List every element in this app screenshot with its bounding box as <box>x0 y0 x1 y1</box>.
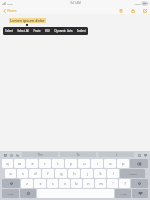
button[interactable]: i <box>91 159 103 168</box>
staticText: e <box>31 161 34 166</box>
button[interactable]: Return <box>120 169 145 178</box>
button[interactable]: h <box>68 169 80 178</box>
button[interactable]: b <box>71 179 82 188</box>
staticText: m <box>99 181 103 186</box>
button[interactable]: f <box>42 169 54 178</box>
staticText: b <box>75 181 78 186</box>
staticText: f <box>47 171 49 176</box>
staticText: Paste <box>33 29 41 33</box>
button[interactable]: New note <box>141 7 148 14</box>
staticText: x <box>39 181 42 186</box>
staticText: t <box>57 161 59 166</box>
button[interactable]: Dynamic Lists <box>52 27 75 35</box>
button[interactable]: k <box>94 169 106 178</box>
button[interactable]: c <box>47 179 58 188</box>
staticText: Indent <box>77 29 86 33</box>
staticText: d <box>34 171 37 176</box>
button[interactable]: z <box>21 179 33 188</box>
button[interactable]: d <box>29 169 41 178</box>
button[interactable]: e <box>26 159 38 168</box>
button[interactable]: Emoji <box>9 153 13 157</box>
button[interactable]: Keyboard settings <box>137 153 141 157</box>
staticText: I <box>116 153 117 157</box>
staticText: s <box>22 171 24 176</box>
button[interactable]: Paste <box>31 27 43 35</box>
staticText: ? <box>124 181 126 186</box>
staticText: c <box>52 181 54 186</box>
button[interactable]: m <box>95 179 106 188</box>
button[interactable]: Select All <box>15 27 31 35</box>
staticText: Notes <box>7 8 17 13</box>
button[interactable]: The <box>22 152 58 157</box>
button[interactable]: Delete <box>117 7 124 14</box>
staticText: q <box>6 161 9 166</box>
button[interactable]: q <box>2 159 13 168</box>
staticText: g <box>60 171 63 176</box>
staticText: return <box>129 172 137 175</box>
button[interactable]: Dismiss keyboard <box>132 189 148 198</box>
button[interactable]: a <box>5 169 16 178</box>
staticText: l <box>113 171 114 176</box>
button[interactable]: w <box>14 159 25 168</box>
button[interactable]: Backspace <box>130 159 148 168</box>
button[interactable]: Select <box>3 27 15 35</box>
staticText: The <box>38 153 43 157</box>
staticText: y <box>70 161 72 166</box>
button[interactable]: Shift <box>131 179 148 188</box>
staticText: Select All <box>17 29 29 33</box>
button[interactable]: Emoji keyboard <box>20 189 36 198</box>
button[interactable]: r <box>39 159 51 168</box>
button[interactable]: p <box>117 159 129 168</box>
button[interactable]: Text format <box>15 153 19 157</box>
staticText: BIU <box>45 29 50 33</box>
staticText: a <box>9 171 12 176</box>
staticText: v <box>64 181 66 186</box>
button[interactable]: u <box>78 159 90 168</box>
button[interactable]: Share <box>129 7 136 14</box>
staticText: h <box>73 171 76 176</box>
button[interactable]: o <box>104 159 116 168</box>
button[interactable]: l <box>107 169 119 178</box>
staticText: .?123 <box>7 192 14 195</box>
staticText: k <box>99 171 102 176</box>
button[interactable]: Undo <box>3 153 7 157</box>
button[interactable]: t <box>52 159 64 168</box>
staticText: n <box>87 181 90 186</box>
staticText: 100% <box>134 2 141 5</box>
button[interactable]: x <box>34 179 46 188</box>
staticText: i <box>97 161 98 166</box>
button[interactable]: I <box>98 152 134 157</box>
button[interactable]: Hide keyboard <box>143 153 147 157</box>
staticText: w <box>18 161 21 166</box>
button[interactable]: j <box>81 169 93 178</box>
button[interactable]: n <box>83 179 94 188</box>
button[interactable]: .?123 <box>115 189 131 198</box>
staticText: Select <box>5 29 13 33</box>
button[interactable]: s <box>17 169 28 178</box>
button[interactable]: y <box>65 159 77 168</box>
staticText: j <box>87 171 88 176</box>
button[interactable]: v <box>59 179 70 188</box>
staticText: ! <box>112 181 114 186</box>
button[interactable]: ? <box>119 179 130 188</box>
button[interactable]: BIU <box>43 27 52 35</box>
staticText: Dynamic Lists <box>54 29 73 33</box>
staticText: 9:41 AM <box>70 1 81 5</box>
button[interactable]: Indent <box>75 27 88 35</box>
staticText: To <box>76 153 80 157</box>
button[interactable]: Notes <box>2 7 18 14</box>
button[interactable]: .?123 <box>2 189 19 198</box>
button[interactable]: ! <box>107 179 118 188</box>
staticText: Lorem ipsum dolor <box>10 18 45 23</box>
staticText: o <box>109 161 112 166</box>
staticText: z <box>26 181 28 186</box>
button[interactable]: Shift <box>2 179 20 188</box>
staticText: .?123 <box>120 192 127 195</box>
staticText: p <box>122 161 125 166</box>
staticText: iPad <box>7 2 13 5</box>
button[interactable]: To <box>60 152 96 157</box>
staticText: u <box>83 161 86 166</box>
button[interactable]: g <box>55 169 67 178</box>
staticText: r <box>44 161 46 166</box>
